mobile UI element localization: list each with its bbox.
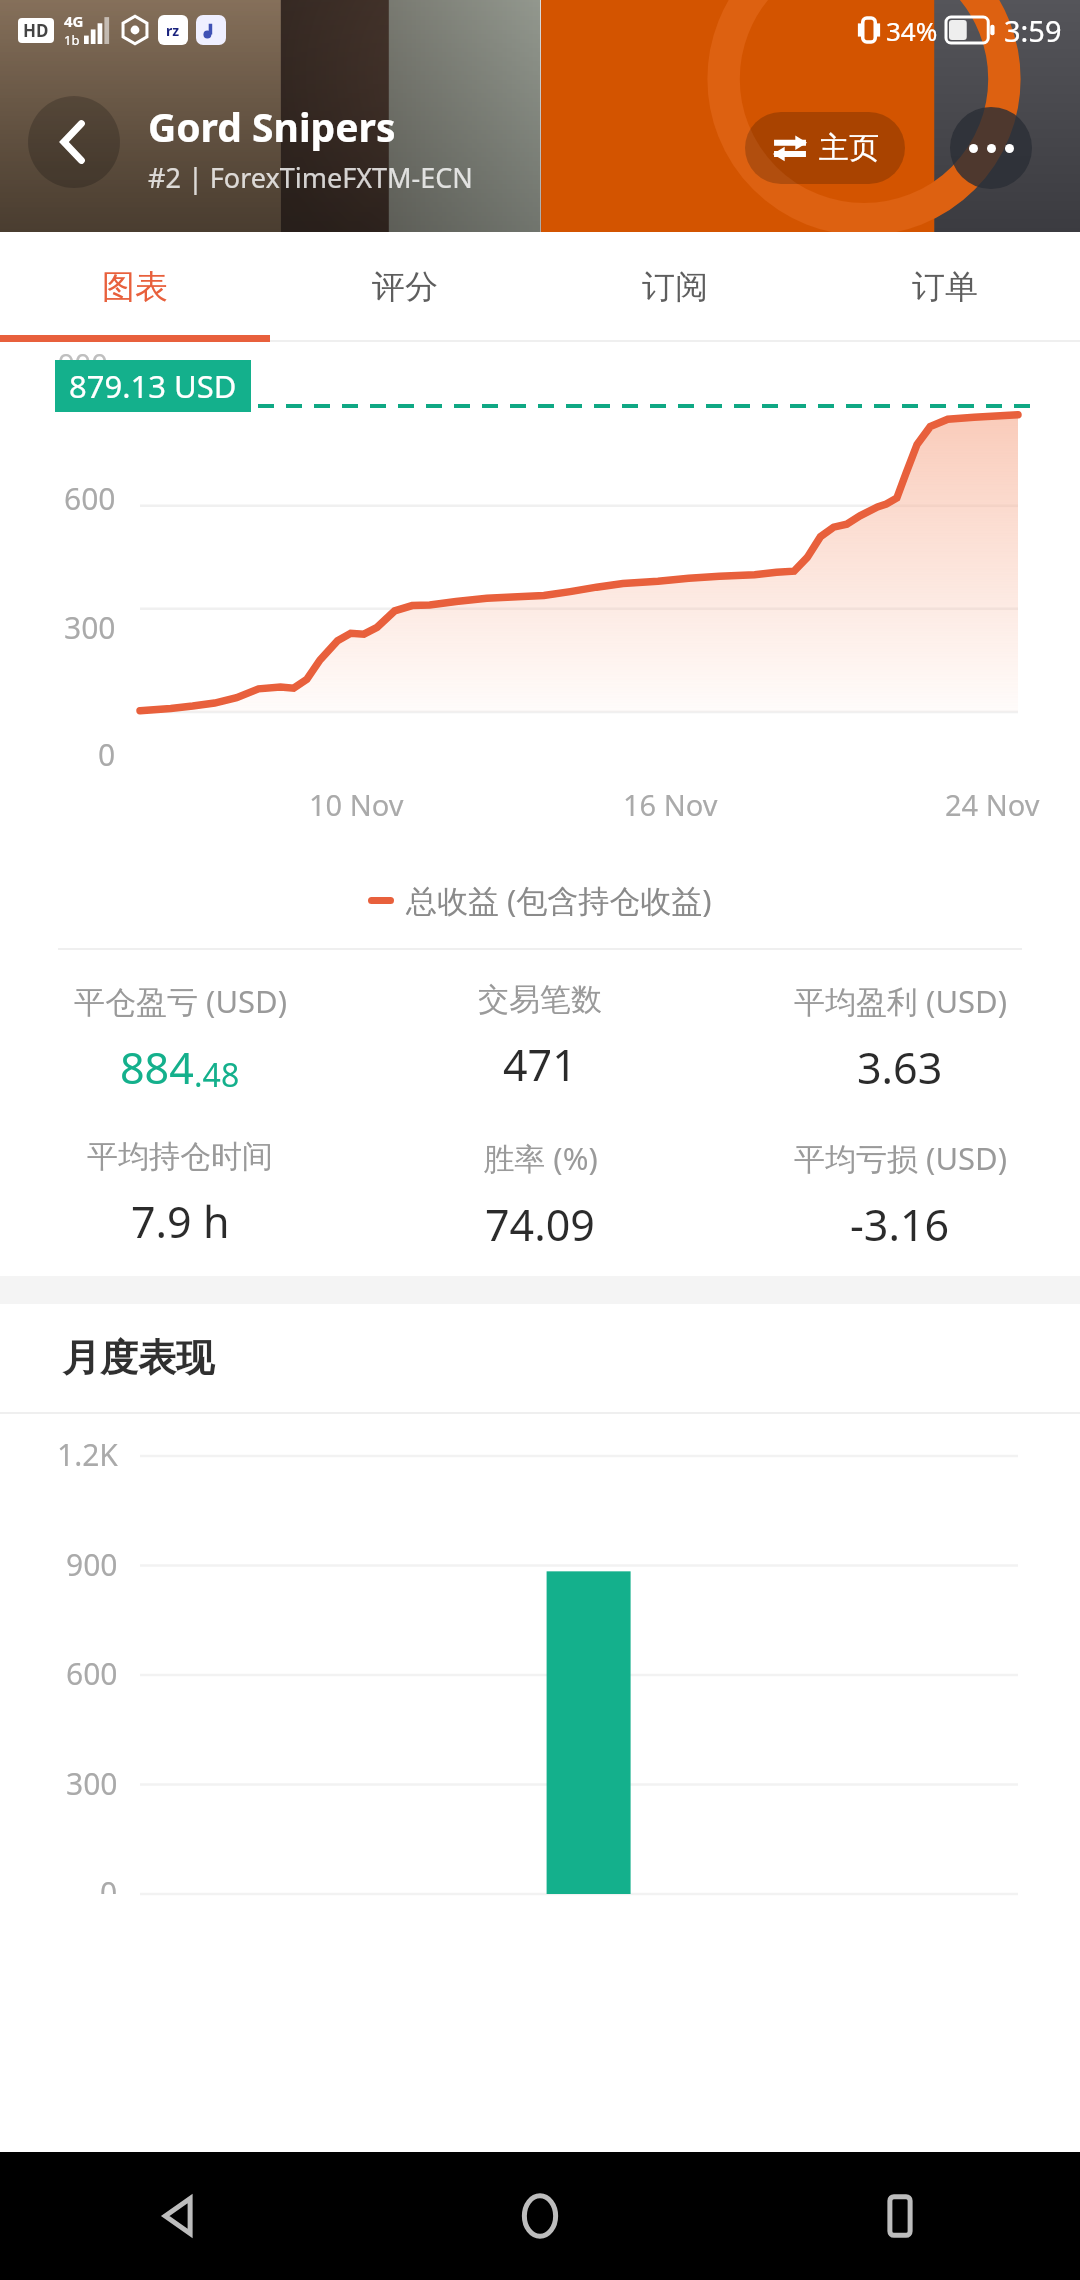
- staticText: 平仓盈亏 (USD): [74, 980, 287, 1022]
- staticText: 平均亏损 (USD): [794, 1137, 1007, 1179]
- staticText: 交易笔数: [478, 980, 602, 1019]
- staticText: 24 Nov: [945, 785, 1040, 824]
- staticText: 1.2K: [57, 1434, 118, 1475]
- staticText: Gord Snipers: [148, 100, 396, 153]
- staticText: 订单: [912, 266, 978, 308]
- button[interactable]: Back: [28, 96, 120, 188]
- staticText: 平均持仓时间: [87, 1137, 273, 1176]
- staticText: 471: [503, 1035, 577, 1094]
- staticText: 300: [64, 607, 116, 648]
- button[interactable]: Back: [0, 2152, 360, 2280]
- staticText: 月度表现: [62, 1334, 214, 1382]
- staticText: 平均盈利 (USD): [794, 980, 1007, 1022]
- staticText: 10 Nov: [309, 785, 404, 824]
- staticText: 订阅: [642, 266, 708, 308]
- staticText: 7.9 h: [131, 1192, 230, 1251]
- staticText: 879.13 USD: [69, 365, 237, 407]
- button[interactable]: 主页: [745, 112, 905, 184]
- staticText: #2 | ForexTimeFXTM-ECN: [148, 159, 473, 196]
- staticText: 600: [64, 478, 116, 519]
- staticText: HD: [23, 19, 49, 42]
- button[interactable]: 订单: [810, 232, 1080, 342]
- button[interactable]: 图表: [0, 232, 270, 342]
- staticText: 评分: [372, 266, 438, 308]
- staticText: 900: [58, 344, 108, 383]
- staticText: 74.09: [485, 1195, 595, 1254]
- staticText: 300: [66, 1763, 118, 1804]
- staticText: 主页: [819, 129, 879, 167]
- staticText: 总收益 (包含持仓收益): [406, 879, 712, 921]
- staticText: 3:59: [1004, 11, 1062, 50]
- staticText: 900: [66, 1544, 118, 1585]
- staticText: 图表: [102, 266, 168, 308]
- staticText: -3.16: [850, 1195, 950, 1254]
- staticText: 4G: [64, 11, 84, 31]
- button[interactable]: More options: [950, 107, 1032, 189]
- staticText: 600: [66, 1653, 118, 1694]
- staticText: .48: [194, 1053, 240, 1097]
- staticText: rz: [166, 21, 180, 40]
- staticText: 34%: [886, 13, 938, 48]
- staticText: 0: [98, 734, 116, 775]
- staticText: 16 Nov: [623, 785, 718, 824]
- staticText: 884: [120, 1038, 194, 1097]
- button[interactable]: Home: [360, 2152, 720, 2280]
- button[interactable]: 订阅: [540, 232, 810, 342]
- staticText: 3.63: [857, 1038, 943, 1097]
- staticText: 0: [100, 1872, 118, 1894]
- staticText: 1b: [64, 31, 80, 49]
- staticText: 胜率 (%): [483, 1137, 598, 1179]
- button[interactable]: Recent apps: [720, 2152, 1080, 2280]
- button[interactable]: 评分: [270, 232, 540, 342]
